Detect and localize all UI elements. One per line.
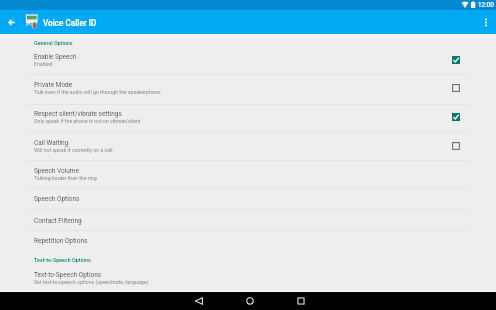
button[interactable]: Enable Speech [450,54,462,66]
staticText: Voice Caller ID [43,18,97,28]
button[interactable]: Private Mode [0,75,496,105]
button[interactable]: Recent apps [292,292,310,310]
button[interactable]: Private Mode [450,82,462,94]
staticText: Enabled [34,61,53,67]
staticText: Set text-to-speech options (speechrate, … [34,279,149,285]
staticText: 12:00 [478,1,494,8]
staticText: Talk even if the audio will go through t… [34,89,161,95]
staticText: General Options [34,40,73,46]
button[interactable]: Respect silent/vibrate settings [450,111,462,123]
button[interactable]: Enable Speech [0,48,496,75]
button[interactable]: Call Waiting [450,140,462,152]
staticText: Speech Options [34,195,80,203]
button[interactable]: Speech Options [0,188,496,210]
staticText: Talking louder than the ring [34,175,97,181]
button[interactable]: Respect silent/vibrate settings [0,105,496,133]
staticText: Enable Speech [34,53,77,61]
staticText: Respect silent/vibrate settings [34,110,122,118]
staticText: Call Waiting [34,139,69,147]
staticText: Repetition Options [34,237,88,245]
button[interactable]: Text-to-Speech Options [0,265,496,285]
staticText: Text-to-Speech Options [34,257,91,263]
staticText: Contact Filtering [34,217,82,225]
button[interactable]: Call Waiting [0,133,496,161]
button[interactable]: Home [241,292,259,310]
button[interactable]: Repetition Options [0,231,496,252]
staticText: Will not speak if currently on a call [34,147,113,153]
button[interactable]: Speech Volume [0,161,496,188]
staticText: Private Mode [34,81,73,89]
staticText: Speech Volume [34,167,80,175]
button[interactable]: Navigate up [0,11,22,33]
button[interactable]: Contact Filtering [0,210,496,231]
staticText: Only speak if the phone is not on vibrat… [34,118,141,124]
button[interactable]: More options [476,10,496,34]
button[interactable]: Back [190,292,208,310]
staticText: Text-to-Speech Options [34,271,102,279]
